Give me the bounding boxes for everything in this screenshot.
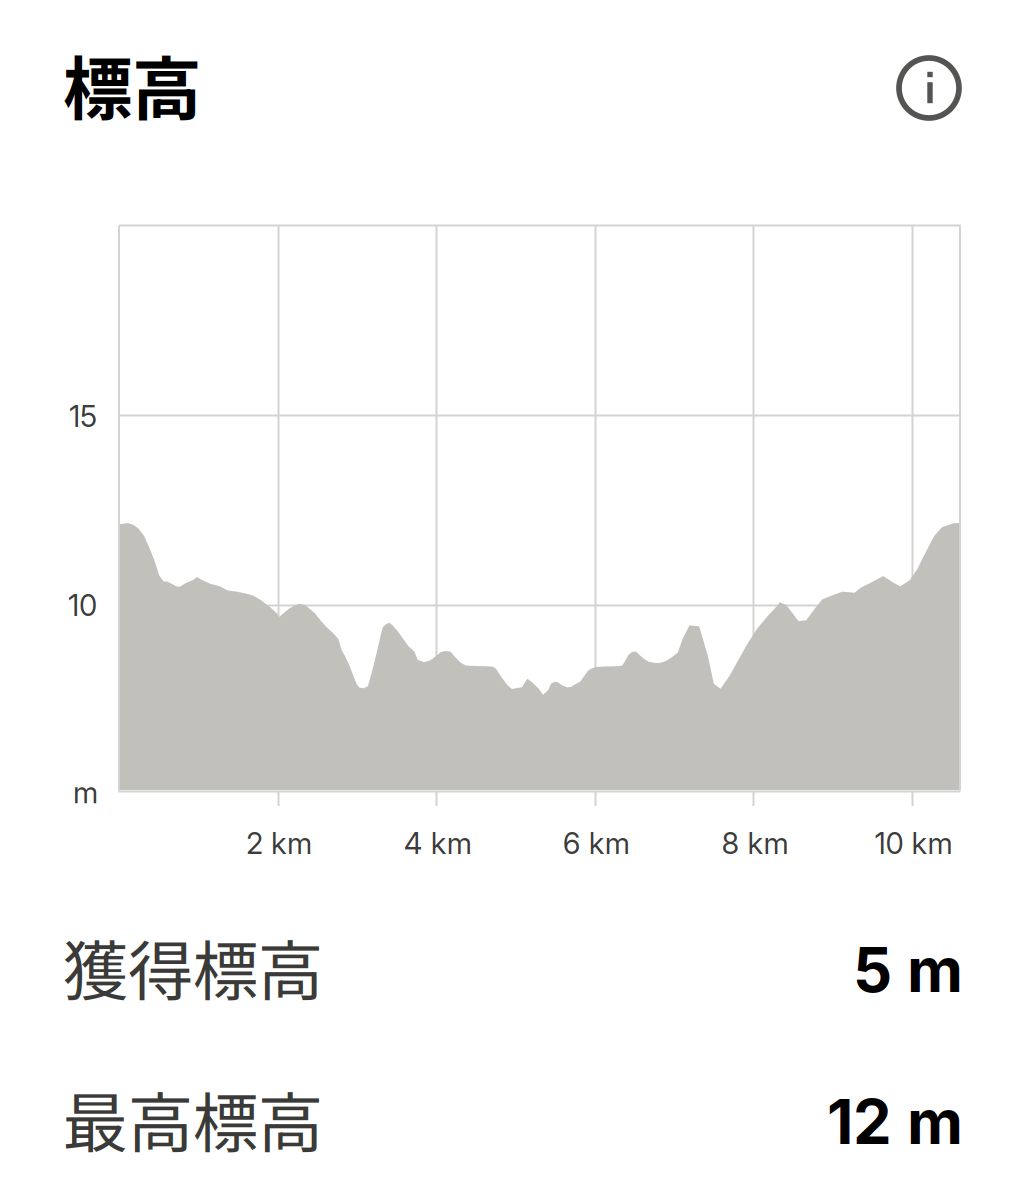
staticText: 5 m [853,932,963,1007]
staticText: 15 [69,398,97,434]
staticText: 12 m [827,1084,963,1159]
staticText: 6 km [563,826,630,861]
staticText: 4 km [404,826,472,861]
staticText: 10 km [875,826,953,861]
staticText: 8 km [721,826,788,861]
button[interactable]: Info [885,44,973,132]
staticText: 10 [68,587,97,623]
staticText: 標高 [63,34,201,134]
staticText: m [73,775,98,810]
staticText: 最高標高 [63,1071,323,1166]
staticText: 2 km [246,826,312,861]
staticText: 獲得標高 [63,919,323,1014]
